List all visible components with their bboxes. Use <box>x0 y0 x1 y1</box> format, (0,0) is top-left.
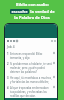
staticText: la Palabra de Dios <box>14 15 50 20</box>
staticText: la verdad de <box>29 9 55 14</box>
staticText: Entonces respondió Elifaz temanita, y di… <box>10 52 52 60</box>
button[interactable]: Play audio <box>12 39 15 42</box>
button[interactable]: 2 <box>7 61 55 75</box>
staticText: Job 4 <box>7 45 15 49</box>
staticText: 2 <box>7 62 9 66</box>
button[interactable]: Font size <box>9 39 12 42</box>
button[interactable]: Search <box>50 39 53 42</box>
staticText: 3 <box>7 76 9 80</box>
staticText: He aquí, tú enseñabas a muchos, y fortal… <box>10 76 52 84</box>
button[interactable]: Book <box>6 39 9 42</box>
button[interactable]: 3 <box>7 75 55 85</box>
button[interactable]: Settings <box>15 39 18 42</box>
staticText: Biblia con audio: <box>16 2 49 7</box>
button[interactable]: More options <box>53 39 56 42</box>
staticText: escuche <box>11 9 28 14</box>
button[interactable]: 4 <box>7 85 55 99</box>
staticText: 1 <box>7 52 9 56</box>
staticText: Si probáremos a hablarte, te será molest… <box>10 62 52 74</box>
staticText: 4 <box>7 86 9 90</box>
staticText: Al que tropezaba enderezaban tus palabra… <box>10 86 52 98</box>
button[interactable]: 1 <box>7 51 55 61</box>
